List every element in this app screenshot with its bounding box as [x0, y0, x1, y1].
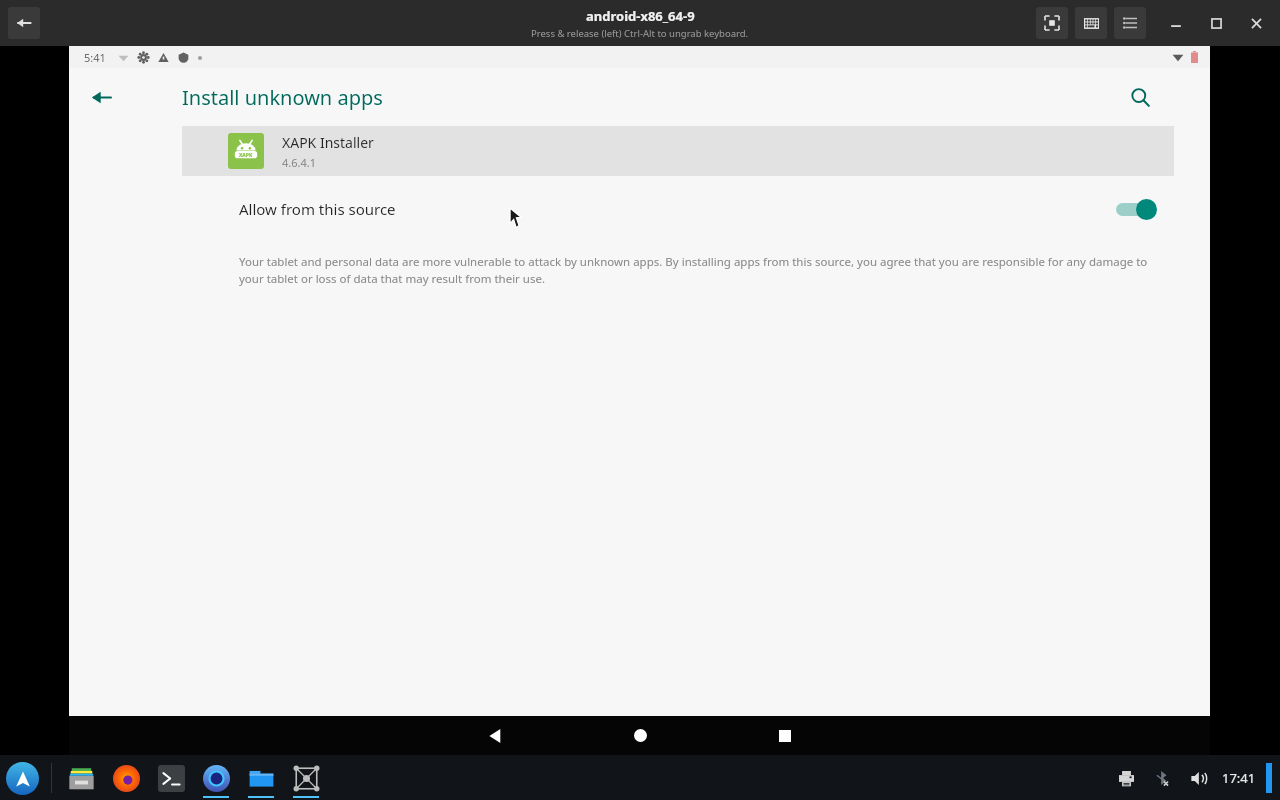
- button[interactable]: Virtual machine: [289, 758, 323, 798]
- staticText: Install unknown apps: [182, 84, 383, 111]
- button[interactable]: Back: [8, 7, 40, 39]
- button[interactable]: Firefox: [109, 758, 143, 798]
- button[interactable]: Recent apps: [755, 716, 815, 755]
- button[interactable]: XAPK: [182, 126, 1174, 176]
- button[interactable]: Keyboard: [1075, 7, 1107, 39]
- button[interactable]: Printers: [1114, 766, 1138, 790]
- button[interactable]: Navigate up: [79, 75, 123, 119]
- staticText: Allow from this source: [239, 199, 1114, 219]
- button[interactable]: More options: [1114, 7, 1146, 39]
- staticText: android-x86_64-9: [586, 7, 695, 25]
- button[interactable]: Bluetooth disabled: [1150, 766, 1174, 790]
- staticText: XAPK: [239, 152, 253, 159]
- button[interactable]: Browser: [199, 758, 233, 798]
- button[interactable]: Fullscreen: [1036, 7, 1068, 39]
- button[interactable]: Back: [465, 716, 525, 755]
- button[interactable]: Minimize: [1162, 9, 1190, 37]
- button[interactable]: Home: [610, 716, 670, 755]
- button[interactable]: Terminal: [154, 758, 188, 798]
- staticText: 4.6.4.1: [282, 155, 317, 170]
- staticText: Your tablet and personal data are more v…: [239, 254, 1152, 286]
- staticText: 17:41: [1222, 769, 1256, 787]
- button[interactable]: Files: [244, 758, 278, 798]
- staticText: XAPK Installer: [282, 133, 374, 152]
- staticText: Press & release (left) Ctrl-Alt to ungra…: [531, 27, 749, 40]
- button[interactable]: Close: [1242, 9, 1270, 37]
- button[interactable]: Search: [1118, 75, 1162, 119]
- staticText: 5:41: [84, 50, 106, 65]
- button[interactable]: Maximize: [1202, 9, 1230, 37]
- button[interactable]: Allow from this source: [182, 176, 1174, 242]
- button[interactable]: Application launcher: [6, 762, 39, 795]
- button[interactable]: 17:41: [1220, 769, 1258, 787]
- button[interactable]: Volume: [1186, 766, 1210, 790]
- button[interactable]: File manager: [64, 758, 98, 798]
- button[interactable]: Allow from this source toggle: [1114, 196, 1158, 222]
